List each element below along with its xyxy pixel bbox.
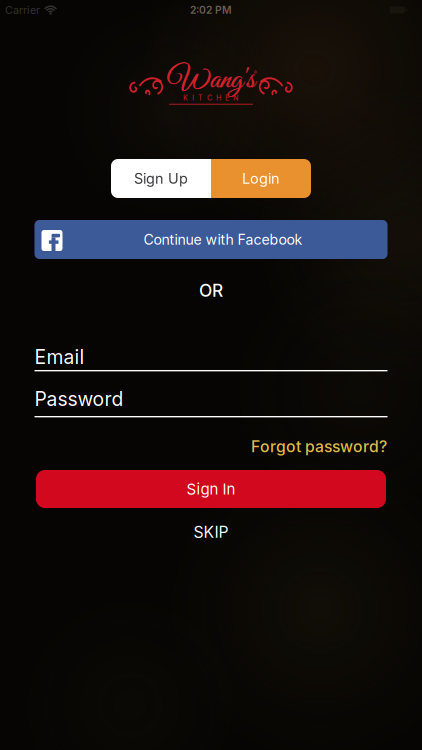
button[interactable]: Login — [211, 159, 311, 198]
button[interactable]: Email — [34, 347, 387, 371]
button[interactable]: Sign In — [36, 470, 386, 508]
staticText: Sign Up — [134, 170, 188, 187]
staticText: Forgot password? — [251, 437, 387, 456]
staticText: Password — [34, 387, 123, 411]
staticText: Continue with Facebook — [143, 231, 302, 248]
button[interactable]: Continue with Facebook — [34, 220, 387, 259]
staticText: OR — [199, 280, 223, 301]
button[interactable]: Password — [34, 389, 387, 417]
staticText: Wang's — [167, 61, 254, 100]
staticText: Wang's — [168, 61, 255, 100]
staticText: Login — [242, 170, 280, 187]
staticText: Sign In — [186, 480, 235, 498]
button[interactable]: Forgot password? — [251, 437, 387, 456]
staticText: Email — [34, 345, 84, 369]
button[interactable]: Sign Up — [111, 159, 211, 198]
staticText: KITCHEN — [183, 93, 239, 102]
button[interactable]: SKIP — [183, 522, 238, 542]
staticText: 2:02 PM — [190, 4, 232, 16]
staticText: SKIP — [193, 522, 228, 541]
staticText: ® — [253, 69, 257, 76]
staticText: Carrier — [5, 3, 40, 16]
